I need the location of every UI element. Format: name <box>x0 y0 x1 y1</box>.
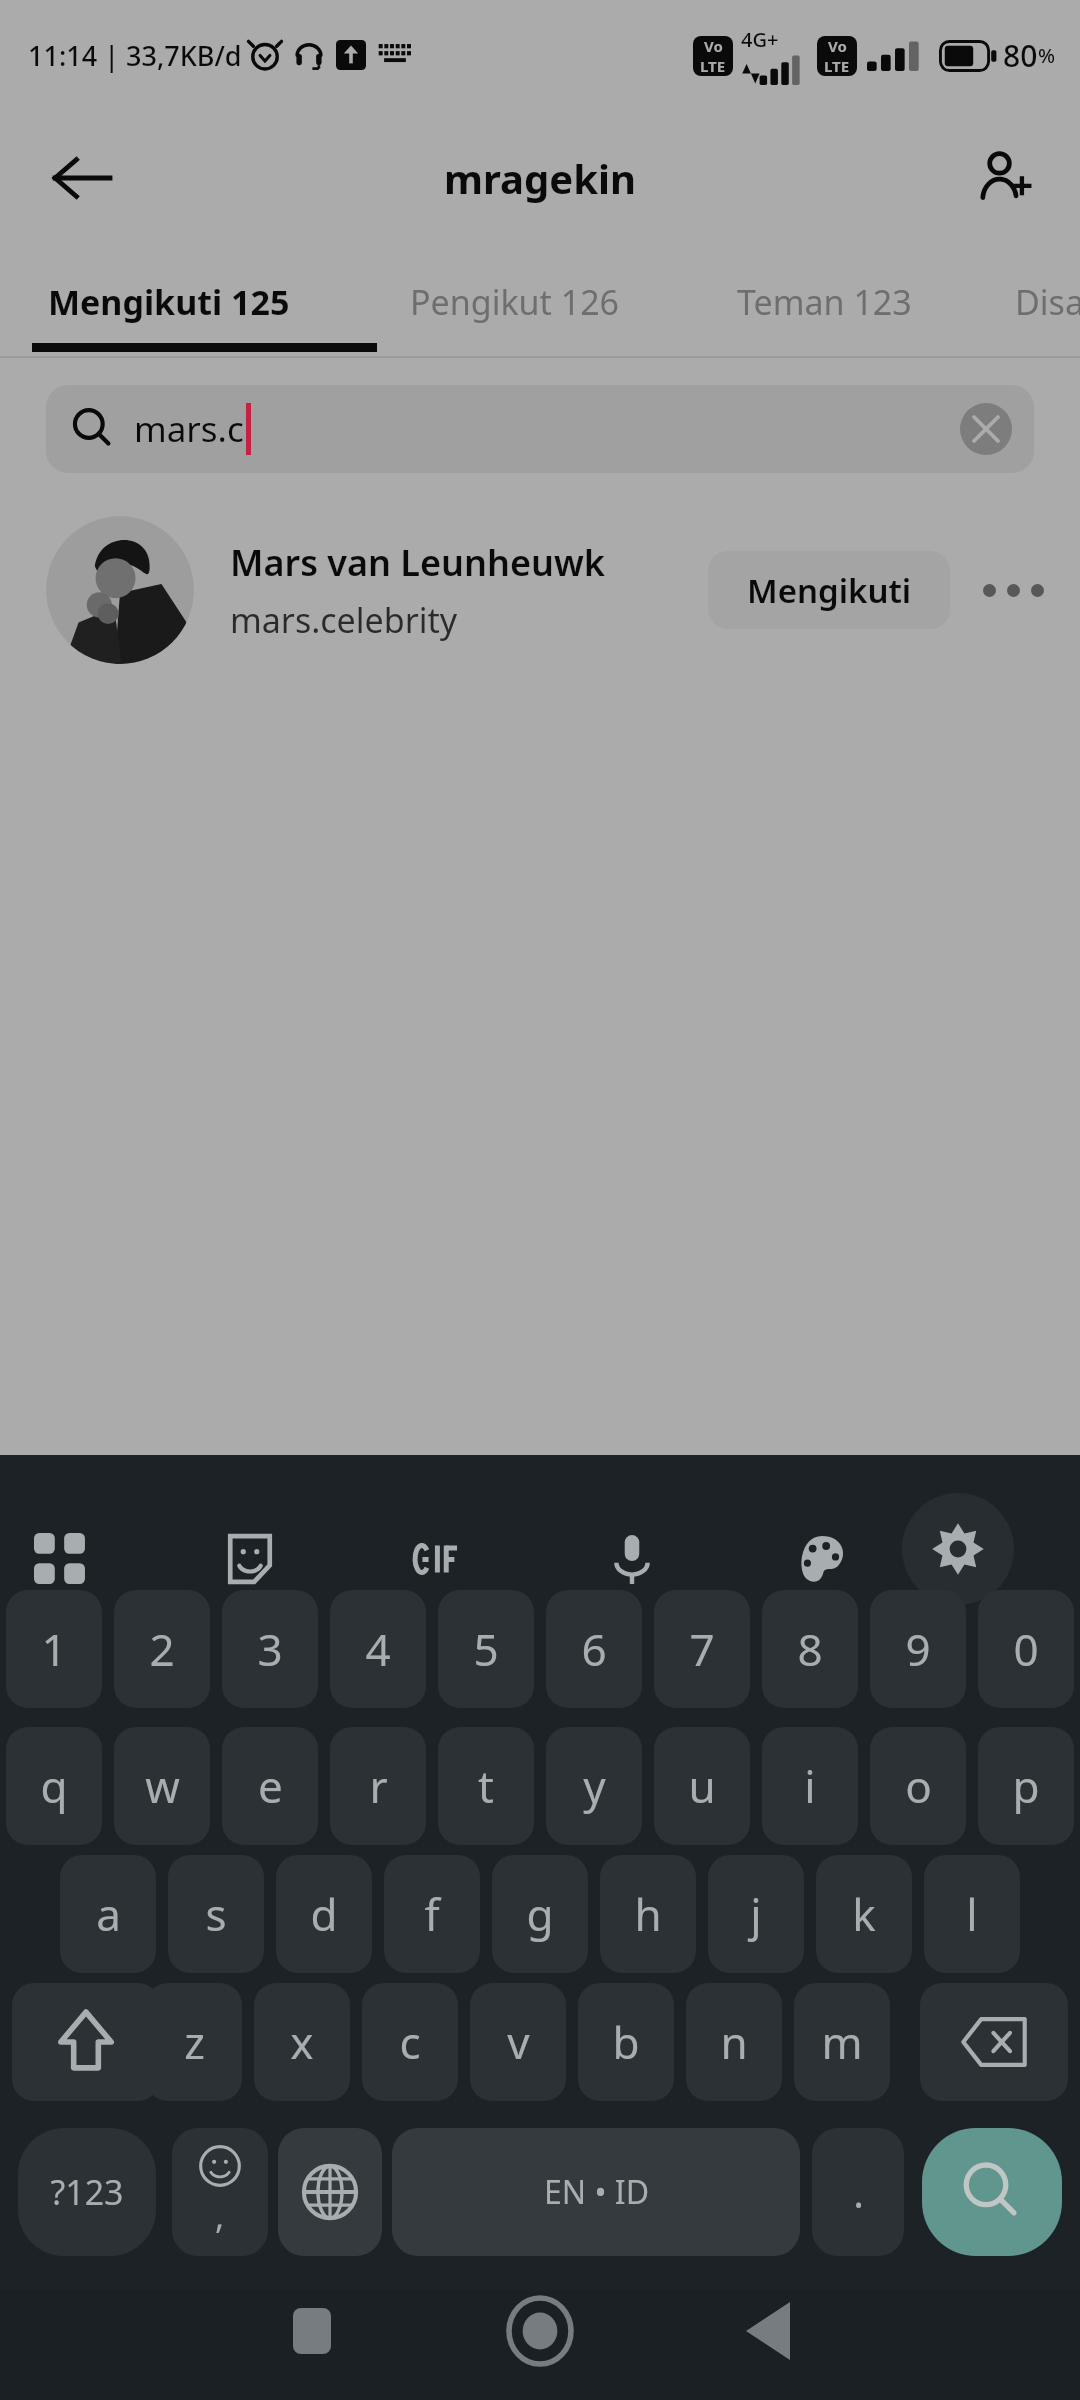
button[interactable]: r <box>330 1727 426 1845</box>
staticText: 8 <box>797 1619 823 1679</box>
button[interactable]: Keyboard tool <box>16 1515 104 1603</box>
button[interactable]: h <box>600 1855 696 1973</box>
button[interactable]: p <box>978 1727 1074 1845</box>
button[interactable]: b <box>578 1983 674 2101</box>
staticText: Pengikut 126 <box>410 279 620 325</box>
button[interactable]: Teman 123 <box>715 245 934 358</box>
staticText: y <box>583 1756 606 1816</box>
button[interactable]: 0 <box>978 1590 1074 1708</box>
button[interactable]: Symbols <box>18 2128 156 2256</box>
button[interactable]: q <box>6 1727 102 1845</box>
button[interactable]: Shift <box>12 1983 160 2101</box>
button[interactable]: Keyboard tool <box>588 1515 676 1603</box>
staticText: % <box>1038 42 1056 69</box>
button[interactable]: Keyboard tool <box>206 1515 294 1603</box>
staticText: 6 <box>581 1619 607 1679</box>
button[interactable]: Pengikut 126 <box>388 245 642 358</box>
button[interactable]: 8 <box>762 1590 858 1708</box>
button[interactable]: Add people <box>956 130 1052 226</box>
staticText: d <box>310 1884 338 1944</box>
button[interactable]: f <box>384 1855 480 1973</box>
staticText: 9 <box>905 1619 931 1679</box>
button[interactable]: s <box>168 1855 264 1973</box>
staticText: e <box>258 1756 283 1816</box>
staticText: mars.celebrity <box>230 597 458 643</box>
staticText: EN • ID <box>544 2170 649 2214</box>
button[interactable]: g <box>492 1855 588 1973</box>
button[interactable]: v <box>470 1983 566 2101</box>
button[interactable]: 4 <box>330 1590 426 1708</box>
button[interactable]: Period <box>812 2128 904 2256</box>
button[interactable]: l <box>924 1855 1020 1973</box>
staticText: Disa <box>1015 279 1080 325</box>
button[interactable]: 1 <box>6 1590 102 1708</box>
staticText: p <box>1012 1756 1040 1816</box>
button[interactable]: 9 <box>870 1590 966 1708</box>
button[interactable]: c <box>362 1983 458 2101</box>
button[interactable]: Mars van Leunheuwk <box>0 515 1080 665</box>
button[interactable]: k <box>816 1855 912 1973</box>
staticText: 2 <box>149 1619 175 1679</box>
button[interactable]: a <box>60 1855 156 1973</box>
button[interactable]: Keyboard tool <box>396 1515 484 1603</box>
button[interactable]: x <box>254 1983 350 2101</box>
button[interactable]: d <box>276 1855 372 1973</box>
button[interactable]: 2 <box>114 1590 210 1708</box>
button[interactable]: Home <box>460 2290 620 2400</box>
button[interactable]: Backspace <box>920 1983 1068 2101</box>
button[interactable]: More options <box>968 545 1058 635</box>
button[interactable]: Disa <box>993 245 1080 358</box>
button[interactable]: j <box>708 1855 804 1973</box>
staticText: 3 <box>257 1619 283 1679</box>
button[interactable]: 7 <box>654 1590 750 1708</box>
button[interactable]: y <box>546 1727 642 1845</box>
staticText: k <box>852 1884 876 1944</box>
staticText: mragekin <box>444 151 636 205</box>
button[interactable]: Change language <box>278 2128 382 2256</box>
staticText: n <box>720 2012 748 2072</box>
staticText: m <box>821 2012 863 2072</box>
button[interactable]: t <box>438 1727 534 1845</box>
button[interactable]: w <box>114 1727 210 1845</box>
button[interactable]: o <box>870 1727 966 1845</box>
staticText: Teman 123 <box>737 279 912 325</box>
button[interactable]: Clear text <box>960 403 1012 455</box>
staticText: 0 <box>1013 1619 1039 1679</box>
button[interactable]: Keyboard settings <box>902 1493 1014 1605</box>
button[interactable]: 3 <box>222 1590 318 1708</box>
button[interactable]: 6 <box>546 1590 642 1708</box>
button[interactable]: 5 <box>438 1590 534 1708</box>
staticText: x <box>290 2012 314 2072</box>
staticText: j <box>750 1884 762 1944</box>
staticText: Mengikuti <box>747 568 912 613</box>
staticText: Mars van Leunheuwk <box>230 538 606 587</box>
button[interactable]: n <box>686 1983 782 2101</box>
button[interactable]: e <box>222 1727 318 1845</box>
staticText: 11:14 | 33,7KB/d <box>28 37 242 74</box>
staticText: w <box>145 1756 180 1816</box>
button[interactable]: Space <box>392 2128 800 2256</box>
button[interactable]: Mengikuti <box>708 551 950 629</box>
button[interactable]: Recent apps <box>232 2290 392 2400</box>
button[interactable]: z <box>146 1983 242 2101</box>
button[interactable]: Back <box>688 2290 848 2400</box>
staticText: c <box>399 2012 421 2072</box>
staticText: t <box>478 1756 494 1816</box>
button[interactable]: m <box>794 1983 890 2101</box>
staticText: mars.c <box>134 405 244 453</box>
staticText: a <box>96 1884 121 1944</box>
staticText: Mengikuti 125 <box>48 279 290 325</box>
button[interactable]: Emoji <box>172 2128 268 2256</box>
button[interactable]: Mengikuti 125 <box>26 245 312 358</box>
button[interactable]: Back <box>34 130 130 226</box>
staticText: s <box>205 1884 227 1944</box>
staticText: ?123 <box>50 2169 124 2215</box>
staticText: . <box>853 2165 864 2219</box>
button[interactable]: u <box>654 1727 750 1845</box>
staticText: 80 <box>1003 35 1038 76</box>
button[interactable]: mars.c <box>46 385 1034 473</box>
button[interactable]: i <box>762 1727 858 1845</box>
button[interactable]: Search <box>922 2128 1062 2256</box>
staticText: f <box>424 1884 440 1944</box>
button[interactable]: Keyboard tool <box>778 1515 866 1603</box>
